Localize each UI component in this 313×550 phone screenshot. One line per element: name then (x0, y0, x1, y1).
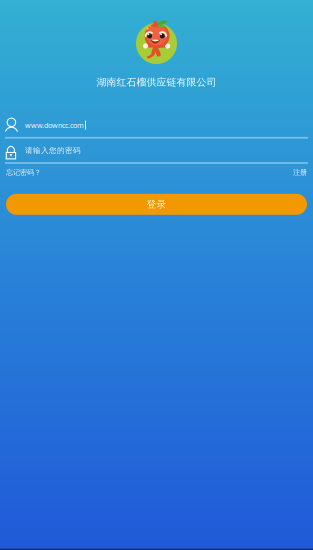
button[interactable]: 登录 (6, 194, 307, 215)
button[interactable]: 注册 (293, 165, 307, 180)
staticText: 忘记密码？ (6, 168, 41, 177)
button[interactable]: 忘记密码？ (6, 165, 41, 180)
staticText: 登录 (146, 198, 166, 210)
staticText: www.downcc.com (25, 120, 84, 130)
staticText: 请输入您的密码 (25, 146, 81, 155)
staticText: 注册 (293, 168, 307, 177)
staticText: 湖南红石榴供应链有限公司 (96, 76, 216, 88)
